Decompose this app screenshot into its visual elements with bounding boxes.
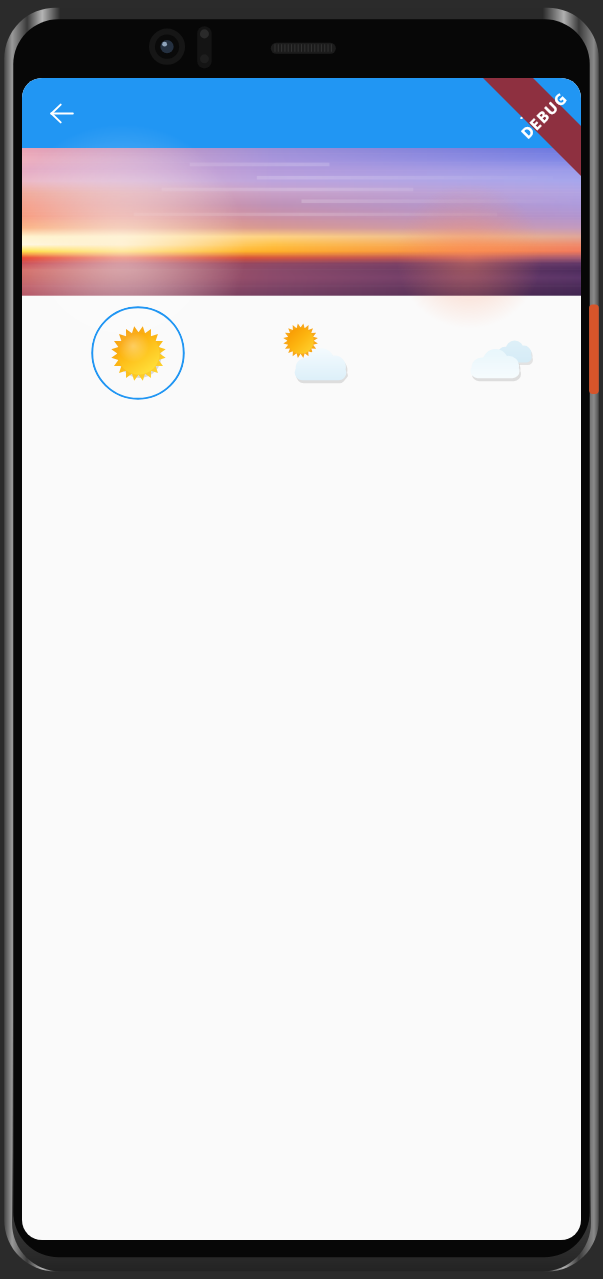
staticText: 저장 [519,100,561,126]
button[interactable]: Cloudy [462,315,540,393]
button[interactable]: Back [38,90,84,136]
button[interactable]: Partly cloudy [277,315,355,393]
button[interactable]: Sunny [91,306,185,400]
button[interactable]: 저장 [509,92,571,134]
staticText: DEBUG [516,87,572,143]
